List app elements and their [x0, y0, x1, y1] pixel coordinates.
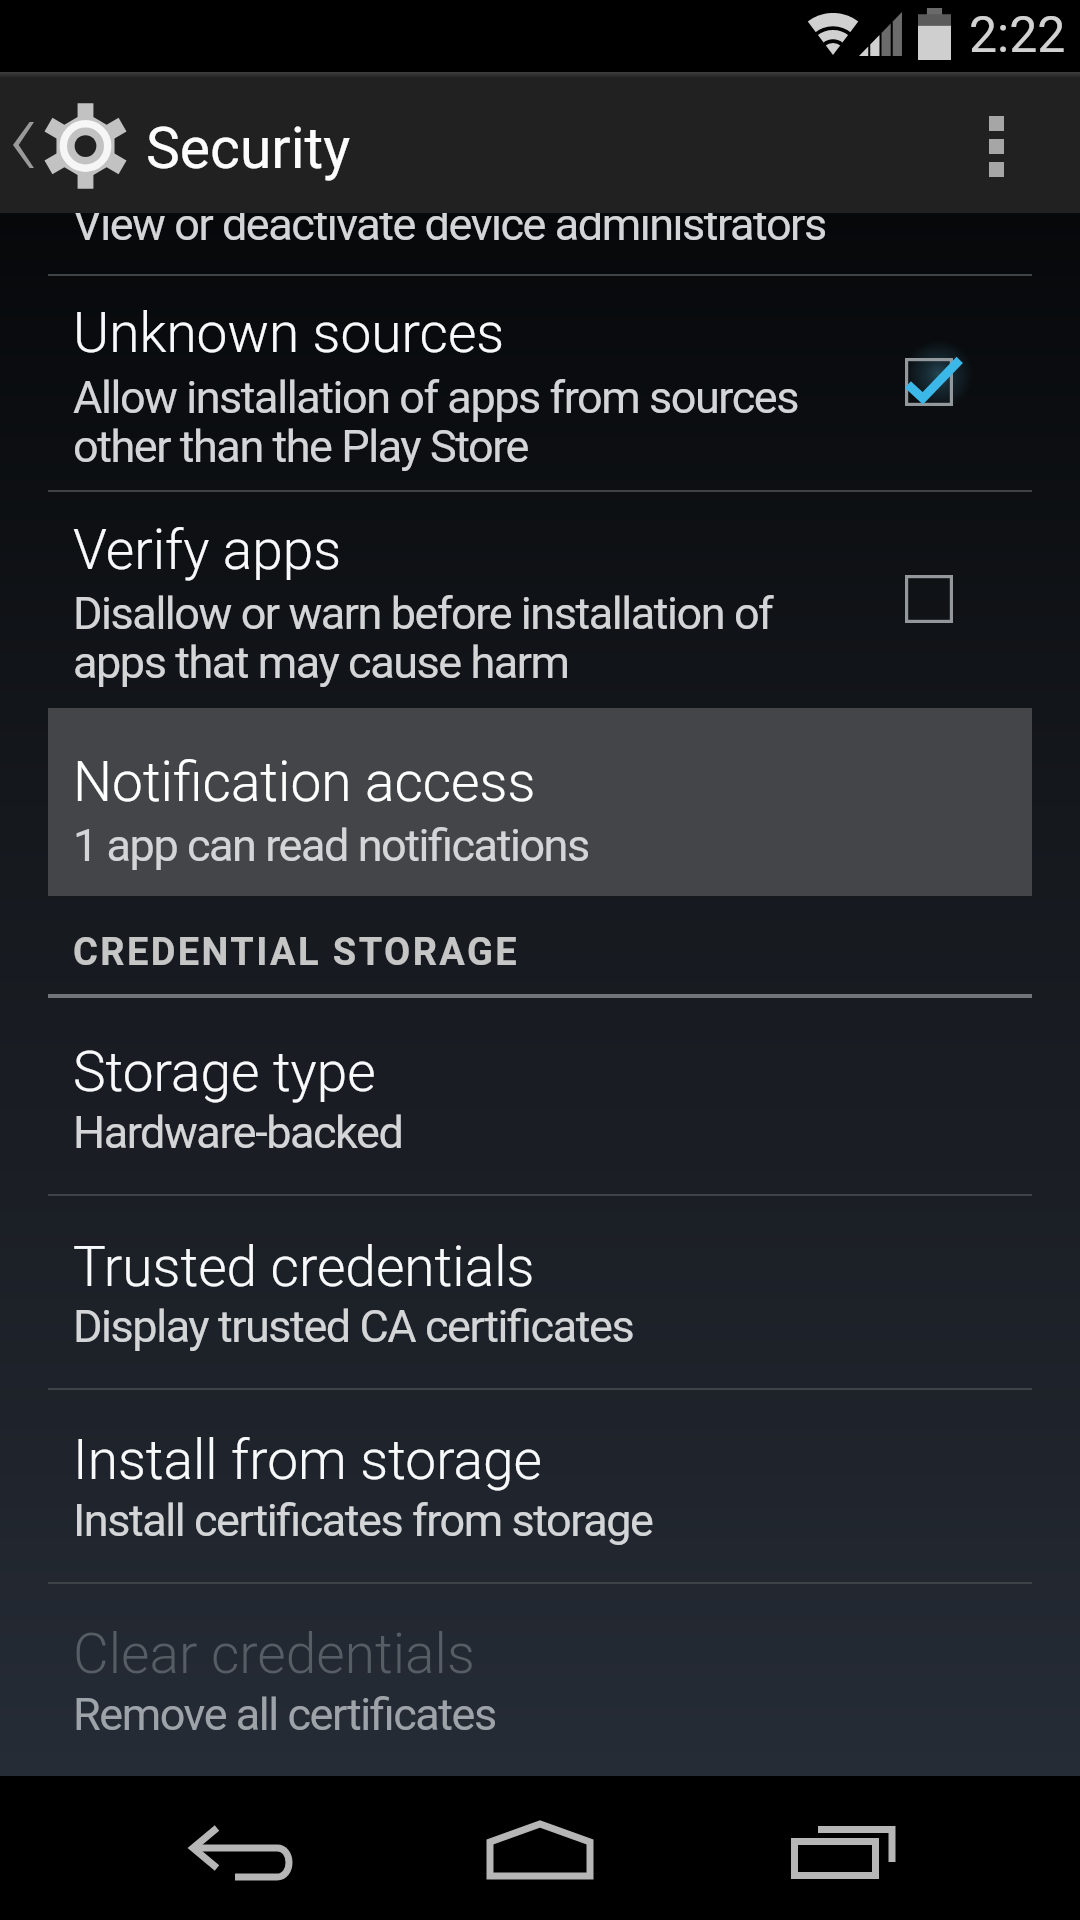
- button[interactable]: [0, 274, 1080, 490]
- staticText: Disallow or warn before installation of: [73, 587, 773, 640]
- staticText: View or deactivate device administrators: [73, 198, 826, 251]
- button[interactable]: More options: [939, 72, 1080, 213]
- button[interactable]: Navigate up: [0, 72, 140, 213]
- staticText: Allow installation of apps from sources: [73, 371, 799, 424]
- staticText: Verify apps: [73, 518, 342, 582]
- button[interactable]: Checked: [869, 322, 989, 442]
- staticText: Trusted credentials: [73, 1235, 535, 1299]
- staticText: Security: [146, 115, 351, 182]
- staticText: Clear credentials: [73, 1622, 475, 1686]
- staticText: apps that may cause harm: [73, 636, 569, 689]
- button[interactable]: [0, 998, 1080, 1194]
- staticText: CREDENTIAL STORAGE: [73, 930, 519, 975]
- button[interactable]: [0, 1194, 1080, 1388]
- staticText: Unknown sources: [73, 301, 505, 365]
- button[interactable]: View or deactivate device administrators: [0, 213, 1080, 274]
- button[interactable]: [0, 1388, 1080, 1582]
- button[interactable]: Home: [442, 1776, 638, 1920]
- staticText: other than the Play Store: [73, 420, 529, 473]
- button[interactable]: Back: [142, 1776, 338, 1920]
- staticText: 2:22: [969, 6, 1066, 65]
- staticText: Install from storage: [73, 1428, 543, 1492]
- button[interactable]: [48, 708, 1032, 896]
- button[interactable]: [0, 1582, 1080, 1776]
- button[interactable]: Recent apps: [742, 1776, 938, 1920]
- staticText: Notification access: [73, 750, 536, 814]
- button[interactable]: Unchecked: [869, 539, 989, 659]
- staticText: Remove all certificates: [73, 1688, 496, 1741]
- staticText: Storage type: [73, 1040, 376, 1104]
- staticText: Install certificates from storage: [73, 1494, 653, 1547]
- button[interactable]: [0, 490, 1080, 708]
- staticText: Hardware-backed: [73, 1106, 403, 1159]
- staticText: 1 app can read notifications: [73, 819, 589, 872]
- staticText: Display trusted CA certificates: [73, 1300, 634, 1353]
